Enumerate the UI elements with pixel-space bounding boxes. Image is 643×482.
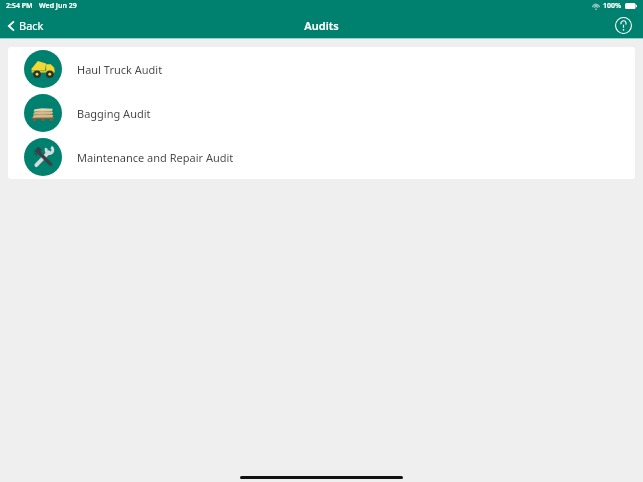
button[interactable]: Help: [612, 14, 635, 37]
staticText: Maintenance and Repair Audit: [77, 150, 234, 165]
staticText: Wed Jun 29: [39, 1, 77, 11]
staticText: Back: [19, 18, 44, 33]
button[interactable]: Bagging Audit: [8, 91, 635, 135]
button[interactable]: Haul Truck Audit: [8, 47, 635, 91]
button[interactable]: Back: [4, 15, 48, 36]
staticText: 100%: [603, 1, 622, 11]
staticText: Haul Truck Audit: [77, 62, 163, 77]
staticText: 2:54 PM: [6, 1, 33, 11]
staticText: Bagging Audit: [77, 106, 151, 121]
button[interactable]: Maintenance and Repair Audit: [8, 135, 635, 179]
staticText: Audits: [304, 18, 339, 33]
